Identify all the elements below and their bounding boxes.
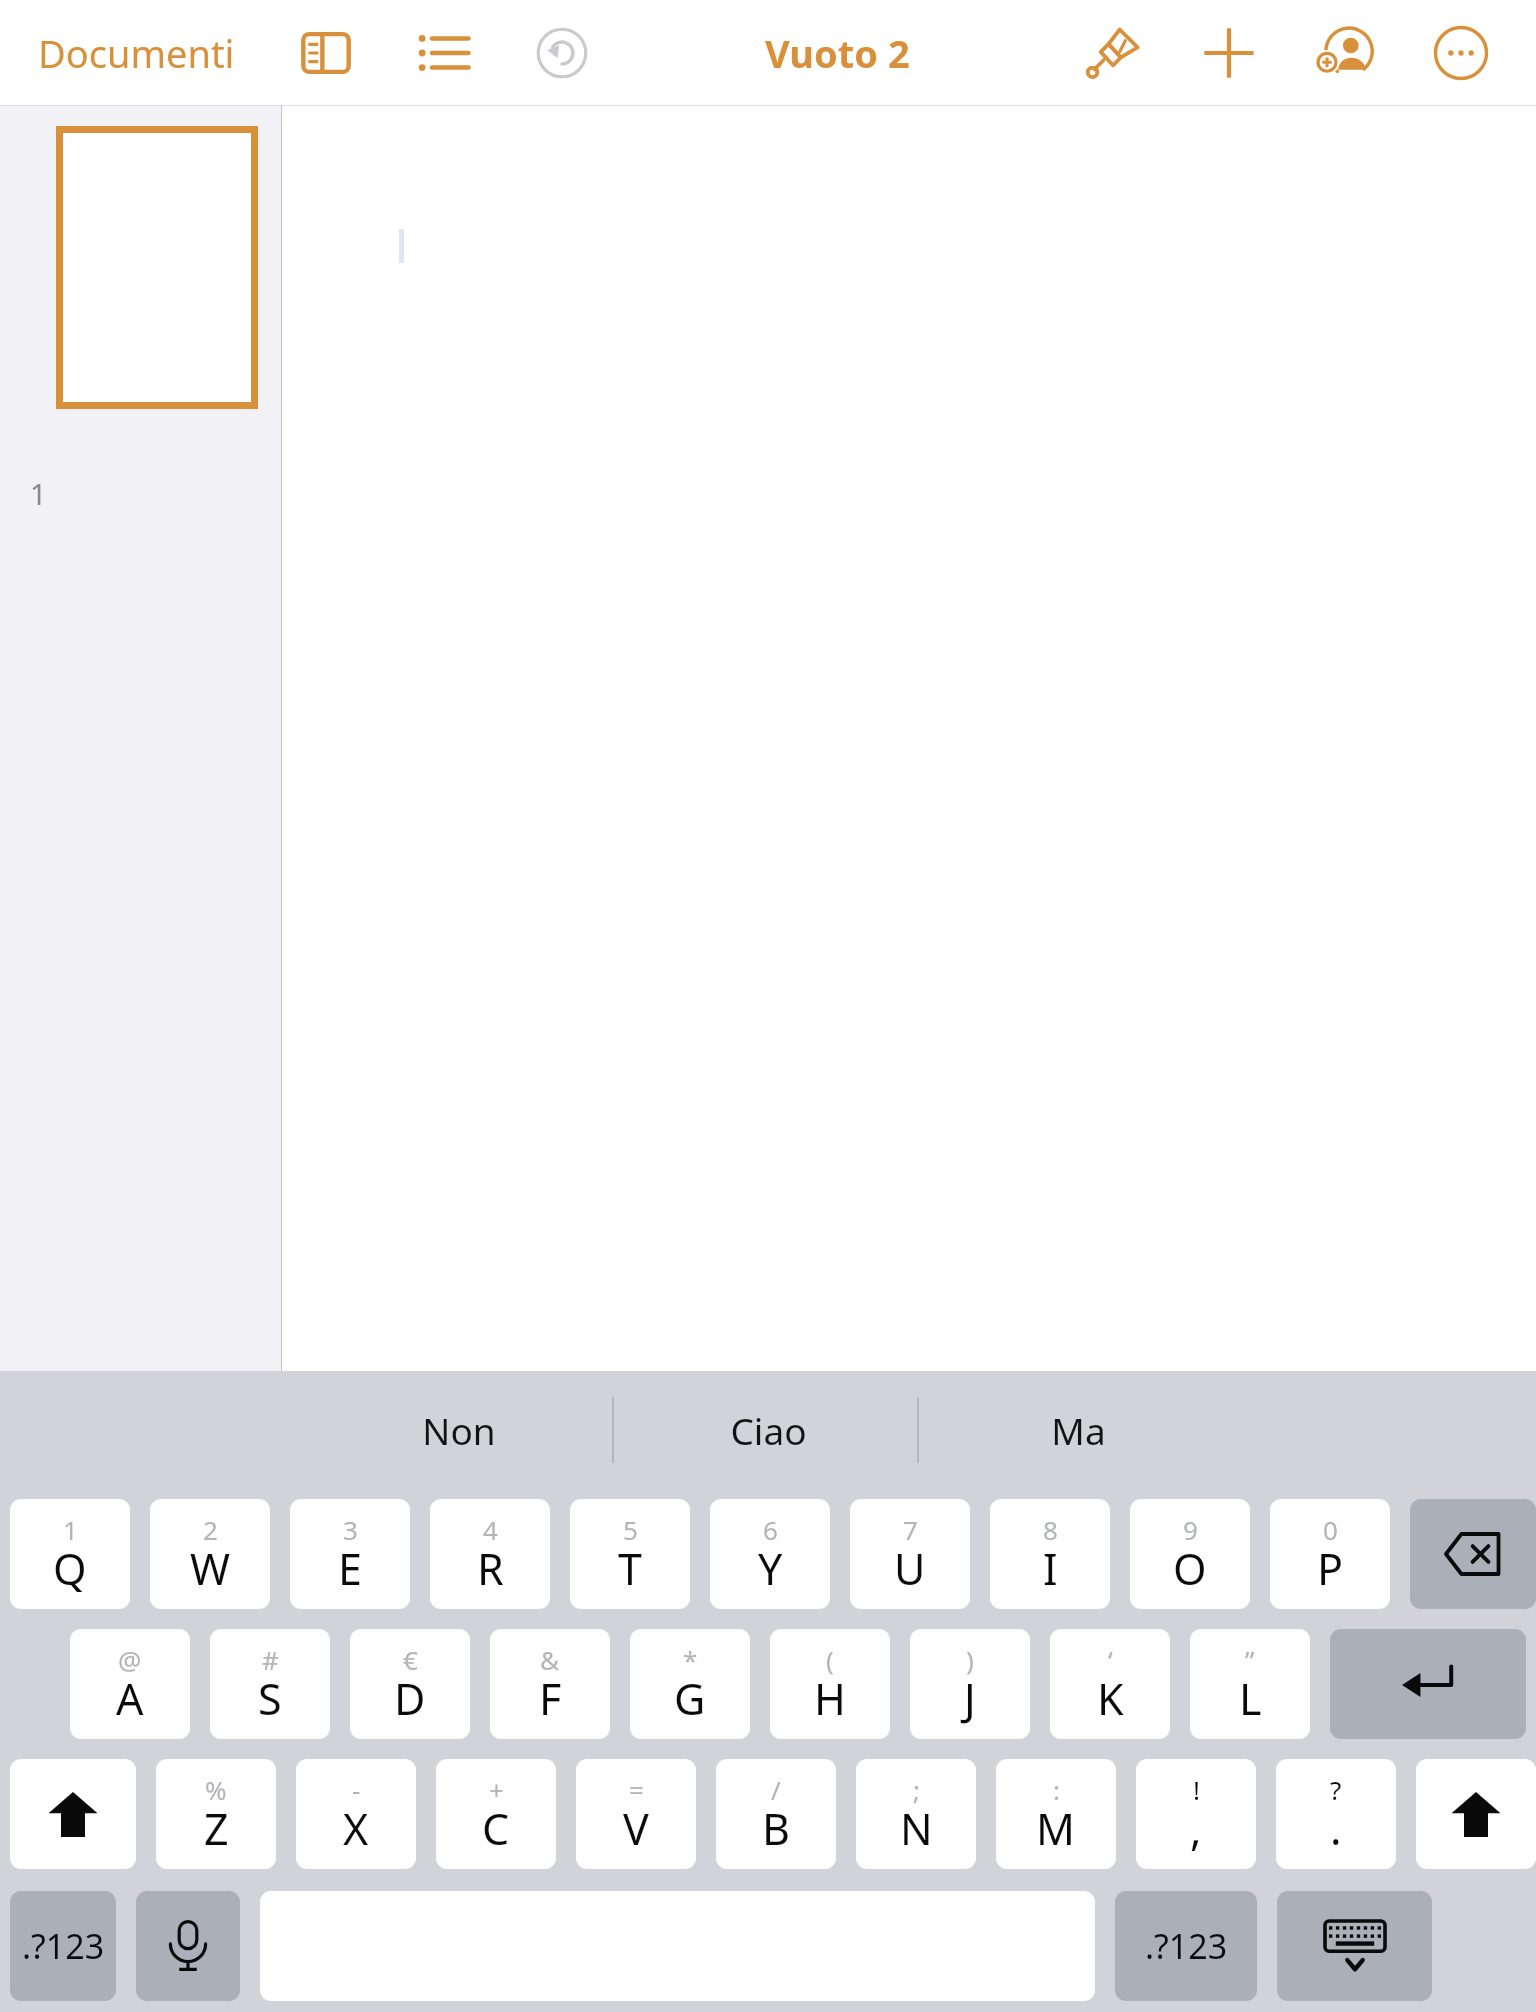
staticText: & <box>540 1642 560 1677</box>
staticText: @ <box>118 1642 142 1677</box>
button[interactable]: # <box>210 1629 330 1739</box>
button[interactable] <box>56 126 258 409</box>
button[interactable]: 8 <box>990 1499 1110 1609</box>
button[interactable]: ; <box>856 1759 976 1869</box>
staticText: L <box>1239 1669 1262 1728</box>
button[interactable]: 2 <box>150 1499 270 1609</box>
button[interactable]: List view <box>407 16 481 90</box>
staticText: F <box>539 1669 562 1728</box>
staticText: , <box>1190 1799 1202 1858</box>
staticText: 2 <box>203 1512 218 1547</box>
button[interactable]: Ciao <box>618 1371 918 1489</box>
button[interactable]: 7 <box>850 1499 970 1609</box>
staticText: 7 <box>903 1512 918 1547</box>
staticText: C <box>482 1799 510 1858</box>
button[interactable]: ? <box>1276 1759 1396 1869</box>
staticText: ? <box>1330 1772 1342 1807</box>
staticText: Q <box>53 1539 87 1598</box>
staticText: * <box>683 1642 698 1677</box>
button[interactable]: & <box>490 1629 610 1739</box>
staticText: X <box>343 1799 369 1858</box>
button[interactable]: ! <box>1136 1759 1256 1869</box>
button[interactable]: Backspace <box>1410 1499 1536 1609</box>
staticText: Ciao <box>730 1405 807 1455</box>
button[interactable]: 6 <box>710 1499 830 1609</box>
staticText: € <box>403 1642 418 1677</box>
staticText: : <box>1053 1772 1060 1807</box>
button[interactable]: Format <box>1076 16 1150 90</box>
staticText: - <box>352 1772 361 1807</box>
staticText: S <box>258 1669 282 1728</box>
staticText: 4 <box>483 1512 498 1547</box>
button[interactable]: Collaborate <box>1308 16 1382 90</box>
button[interactable]: 1 <box>10 1499 130 1609</box>
button[interactable]: Insert <box>1192 16 1266 90</box>
button[interactable]: Documenti <box>30 17 243 89</box>
button[interactable]: Return <box>1330 1629 1526 1739</box>
button[interactable]: @ <box>70 1629 190 1739</box>
button[interactable]: ( <box>770 1629 890 1739</box>
staticText: . <box>1330 1799 1342 1858</box>
button[interactable]: Dictate <box>136 1891 240 2001</box>
staticText: W <box>190 1539 230 1598</box>
staticText: Ma <box>1051 1405 1106 1455</box>
button[interactable]: € <box>350 1629 470 1739</box>
button[interactable]: 4 <box>430 1499 550 1609</box>
button[interactable]: Shift <box>1416 1759 1536 1869</box>
button[interactable]: / <box>716 1759 836 1869</box>
button[interactable]: ” <box>1190 1629 1310 1739</box>
staticText: 8 <box>1043 1512 1058 1547</box>
staticText: E <box>338 1539 362 1598</box>
staticText: # <box>262 1642 279 1677</box>
button[interactable]: 3 <box>290 1499 410 1609</box>
staticText: ! <box>1193 1772 1200 1807</box>
button[interactable]: : <box>996 1759 1116 1869</box>
staticText: B <box>762 1799 790 1858</box>
staticText: ) <box>966 1642 974 1677</box>
button[interactable]: 0 <box>1270 1499 1390 1609</box>
button[interactable]: % <box>156 1759 276 1869</box>
button[interactable]: = <box>576 1759 696 1869</box>
staticText: G <box>674 1669 706 1728</box>
button[interactable]: ‘ <box>1050 1629 1170 1739</box>
button[interactable]: Hide keyboard <box>1277 1891 1432 2001</box>
staticText: ” <box>1245 1642 1255 1677</box>
button[interactable]: .?123 <box>10 1891 116 2001</box>
button[interactable]: Non <box>309 1371 609 1489</box>
staticText: J <box>964 1669 976 1728</box>
staticText: T <box>618 1539 642 1598</box>
staticText: D <box>394 1669 426 1728</box>
staticText: H <box>814 1669 846 1728</box>
staticText: O <box>1173 1539 1207 1598</box>
staticText: Non <box>422 1405 496 1455</box>
staticText: K <box>1097 1669 1124 1728</box>
button[interactable]: Sidebar <box>289 16 363 90</box>
staticText: Vuoto 2 <box>765 27 910 79</box>
staticText: R <box>477 1539 504 1598</box>
button[interactable]: More <box>1424 16 1498 90</box>
button[interactable]: Ma <box>928 1371 1228 1489</box>
button[interactable]: Shift <box>10 1759 136 1869</box>
button[interactable]: .?123 <box>1115 1891 1257 2001</box>
staticText: ( <box>826 1642 834 1677</box>
staticText: P <box>1317 1539 1344 1598</box>
staticText: + <box>489 1772 504 1807</box>
button[interactable]: 9 <box>1130 1499 1250 1609</box>
staticText: ; <box>913 1772 920 1807</box>
button[interactable]: 5 <box>570 1499 690 1609</box>
staticText: N <box>900 1799 933 1858</box>
button[interactable]: - <box>296 1759 416 1869</box>
staticText: 5 <box>623 1512 638 1547</box>
staticText: A <box>116 1669 144 1728</box>
staticText: 1 <box>30 474 47 513</box>
staticText: Documenti <box>38 27 235 79</box>
button[interactable]: * <box>630 1629 750 1739</box>
staticText: U <box>894 1539 926 1598</box>
button[interactable]: ) <box>910 1629 1030 1739</box>
staticText: ‘ <box>1108 1642 1113 1677</box>
staticText: % <box>205 1772 227 1807</box>
button[interactable]: + <box>436 1759 556 1869</box>
staticText: V <box>623 1799 649 1858</box>
button[interactable]: Undo <box>525 16 599 90</box>
